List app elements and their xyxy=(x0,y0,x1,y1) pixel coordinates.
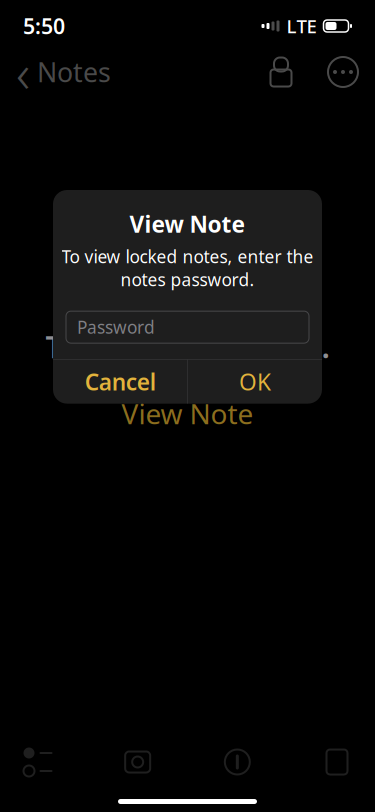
staticText: This note is locked. xyxy=(45,326,329,367)
button[interactable]: View Note xyxy=(105,389,269,438)
button[interactable]: Markup xyxy=(205,738,269,786)
button[interactable]: Lock Note xyxy=(259,50,303,94)
staticText: LTE xyxy=(286,14,316,38)
button[interactable]: Checklist xyxy=(6,738,70,786)
staticText: 5:50 xyxy=(23,12,65,40)
staticText: OK xyxy=(239,367,271,397)
staticText: Notes xyxy=(37,54,111,90)
staticText: To view locked notes, enter the xyxy=(61,245,313,268)
staticText: View Note xyxy=(121,395,253,432)
staticText: ‹ xyxy=(16,37,30,107)
staticText: View Note xyxy=(129,209,245,239)
button[interactable]: More Options xyxy=(321,50,365,94)
button[interactable]: ‹ xyxy=(10,33,117,111)
staticText: Cancel xyxy=(85,367,156,397)
button[interactable]: New Note xyxy=(305,738,369,786)
button[interactable]: Camera xyxy=(106,738,170,786)
button[interactable]: OK xyxy=(188,360,322,404)
staticText: notes password. xyxy=(120,268,254,291)
button[interactable]: Cancel xyxy=(53,360,187,404)
staticText: Password xyxy=(77,316,155,339)
